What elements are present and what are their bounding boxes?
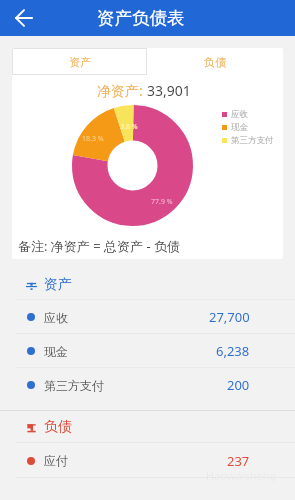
button[interactable]: 应收 <box>0 300 295 334</box>
staticText: 负债 <box>44 418 72 436</box>
staticText: 237 <box>227 452 250 470</box>
staticText: 资产 <box>44 276 72 294</box>
button[interactable]: 第三方支付 <box>0 368 295 402</box>
button[interactable]: 资产 <box>0 269 295 300</box>
staticText: 6,238 <box>216 342 250 360</box>
staticText: 备注: 净资产 = 总资产 - 负债 <box>18 237 181 255</box>
staticText: 资产 <box>69 55 91 69</box>
staticText: 现金 <box>231 122 248 133</box>
staticText: 33,901 <box>147 81 191 100</box>
button[interactable]: 应付 <box>0 443 295 478</box>
staticText: 应付 <box>44 453 68 468</box>
staticText: 18.3 % <box>82 134 104 144</box>
staticText: 第三方支付 <box>44 378 104 393</box>
staticText: 净资产: <box>97 81 147 100</box>
button[interactable]: 资产 <box>12 48 147 75</box>
button[interactable]: Back <box>5 0 41 36</box>
staticText: 资产负债表 <box>97 7 185 29</box>
staticText: 3.8 % <box>120 122 138 132</box>
staticText: 200 <box>227 376 250 394</box>
staticText: 27,700 <box>209 308 250 326</box>
staticText: 应收 <box>231 109 248 120</box>
staticText: 现金 <box>44 344 68 359</box>
button[interactable]: 负债 <box>0 410 295 443</box>
staticText: 77.9 % <box>151 197 173 207</box>
staticText: 负债 <box>204 55 226 69</box>
button[interactable]: 负债 <box>147 48 283 75</box>
staticText: 第三方支付 <box>231 135 274 146</box>
staticText: 应收 <box>44 310 68 325</box>
staticText: Haowaisheng <box>206 468 277 483</box>
button[interactable]: 现金 <box>0 334 295 368</box>
